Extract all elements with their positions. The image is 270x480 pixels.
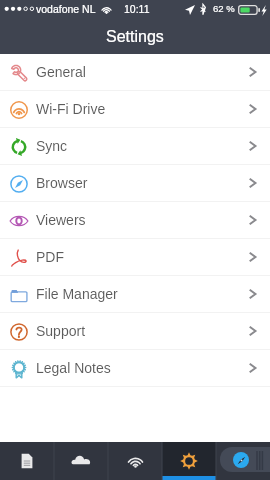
button[interactable]: Wi-Fi bbox=[108, 442, 162, 480]
button[interactable]: Legal Notes bbox=[0, 350, 270, 387]
staticText: Wi-Fi Drive bbox=[36, 101, 106, 117]
button[interactable]: Browser bbox=[216, 442, 270, 480]
button[interactable]: Browser bbox=[0, 165, 270, 202]
button[interactable]: Cloud bbox=[54, 442, 108, 480]
button[interactable]: Settings bbox=[162, 442, 216, 480]
staticText: Support bbox=[36, 323, 86, 339]
button[interactable]: Documents bbox=[0, 442, 54, 480]
button[interactable]: Viewers bbox=[0, 202, 270, 239]
button[interactable]: General bbox=[0, 54, 270, 91]
staticText: File Manager bbox=[36, 286, 118, 302]
button[interactable]: File Manager bbox=[0, 276, 270, 313]
staticText: PDF bbox=[36, 249, 64, 265]
staticText: Legal Notes bbox=[36, 360, 111, 376]
button[interactable]: Support bbox=[0, 313, 270, 350]
button[interactable]: Wi-Fi Drive bbox=[0, 91, 270, 128]
staticText: Settings bbox=[106, 28, 164, 46]
staticText: Sync bbox=[36, 138, 68, 154]
staticText: 62 % bbox=[213, 3, 235, 14]
button[interactable]: Sync bbox=[0, 128, 270, 165]
staticText: Viewers bbox=[36, 212, 86, 228]
staticText: vodafone NL bbox=[36, 3, 96, 15]
staticText: General bbox=[36, 64, 86, 80]
staticText: 10:11 bbox=[124, 3, 150, 15]
button[interactable]: Browser bbox=[220, 447, 270, 472]
staticText: Browser bbox=[36, 175, 88, 191]
button[interactable]: PDF bbox=[0, 239, 270, 276]
